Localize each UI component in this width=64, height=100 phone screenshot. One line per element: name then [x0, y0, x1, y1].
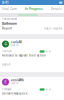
staticText: ▮▮▮: [59, 1, 62, 4]
staticText: ennisWb: [11, 78, 24, 82]
staticText: carlaM: [11, 40, 22, 44]
staticText: E: [4, 80, 6, 84]
staticText: Report: [2, 27, 12, 30]
staticText: Refused to explain their action: [2, 54, 46, 57]
staticText: Helpful: [53, 27, 62, 30]
staticText: In Progress: [25, 7, 43, 11]
staticText: Details: [51, 7, 62, 11]
staticText: Report: [2, 63, 11, 66]
staticText: Bathroom: [2, 21, 17, 25]
staticText: Verified: [2, 50, 11, 53]
staticText: 9:41: [2, 1, 8, 4]
staticText: G: [4, 42, 6, 46]
staticText: Dec 14: [11, 44, 19, 47]
staticText: Dec 10: [11, 82, 19, 85]
staticText: Delivery was quick: [2, 92, 27, 95]
staticText: Vital Care: [2, 7, 17, 11]
staticText: Reply: [44, 27, 51, 30]
staticText: The Meadow: [2, 17, 17, 21]
staticText: Purchase: [2, 88, 11, 91]
